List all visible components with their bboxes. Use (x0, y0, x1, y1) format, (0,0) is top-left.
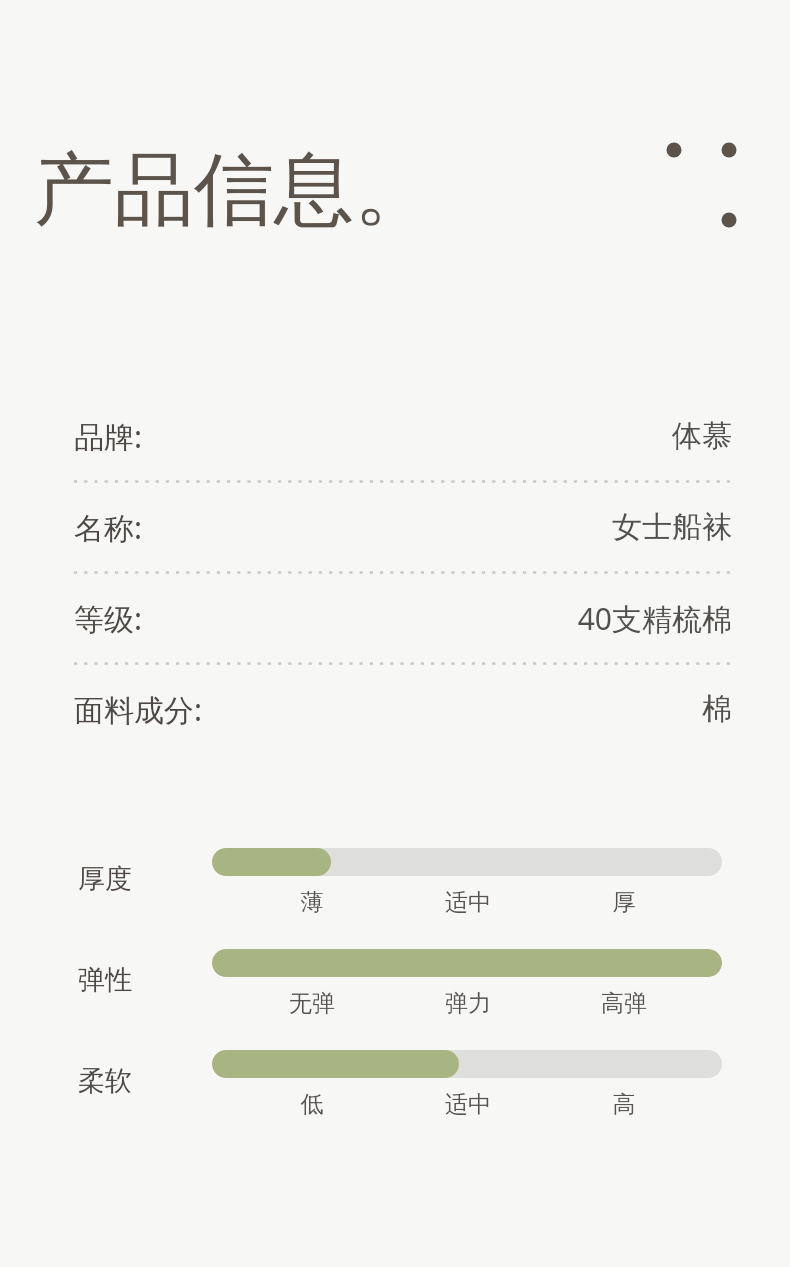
staticText: 高弹 (546, 989, 702, 1018)
other: Decoration (660, 136, 746, 236)
staticText: 棉 (702, 690, 732, 728)
staticText: 弹性 (78, 963, 132, 997)
staticText: 女士船袜 (612, 508, 732, 546)
staticText: 高 (546, 1090, 702, 1119)
staticText: 薄 (234, 888, 390, 917)
staticText: 弹力 (390, 989, 546, 1018)
staticText: 品牌: (74, 416, 143, 457)
staticText: 面料成分: (74, 689, 203, 730)
staticText: 无弹 (234, 989, 390, 1018)
staticText: 名称: (74, 507, 143, 548)
staticText: 柔软 (78, 1064, 132, 1098)
button[interactable]: 弹性 (78, 949, 722, 1018)
button[interactable]: 厚度 (78, 848, 722, 917)
staticText: 40支精梳棉 (577, 598, 732, 639)
staticText: 低 (234, 1090, 390, 1119)
button[interactable]: 品牌: (74, 392, 732, 483)
staticText: 体慕 (672, 417, 732, 455)
button[interactable]: 面料成分: (74, 665, 732, 753)
staticText: 产品信息。 (34, 140, 434, 241)
staticText: 等级: (74, 598, 143, 639)
staticText: 厚度 (78, 862, 132, 896)
button[interactable]: 名称: (74, 483, 732, 574)
staticText: 适中 (390, 888, 546, 917)
button[interactable]: 柔软 (78, 1050, 722, 1119)
staticText: 厚 (546, 888, 702, 917)
button[interactable]: 等级: (74, 574, 732, 665)
staticText: 适中 (390, 1090, 546, 1119)
